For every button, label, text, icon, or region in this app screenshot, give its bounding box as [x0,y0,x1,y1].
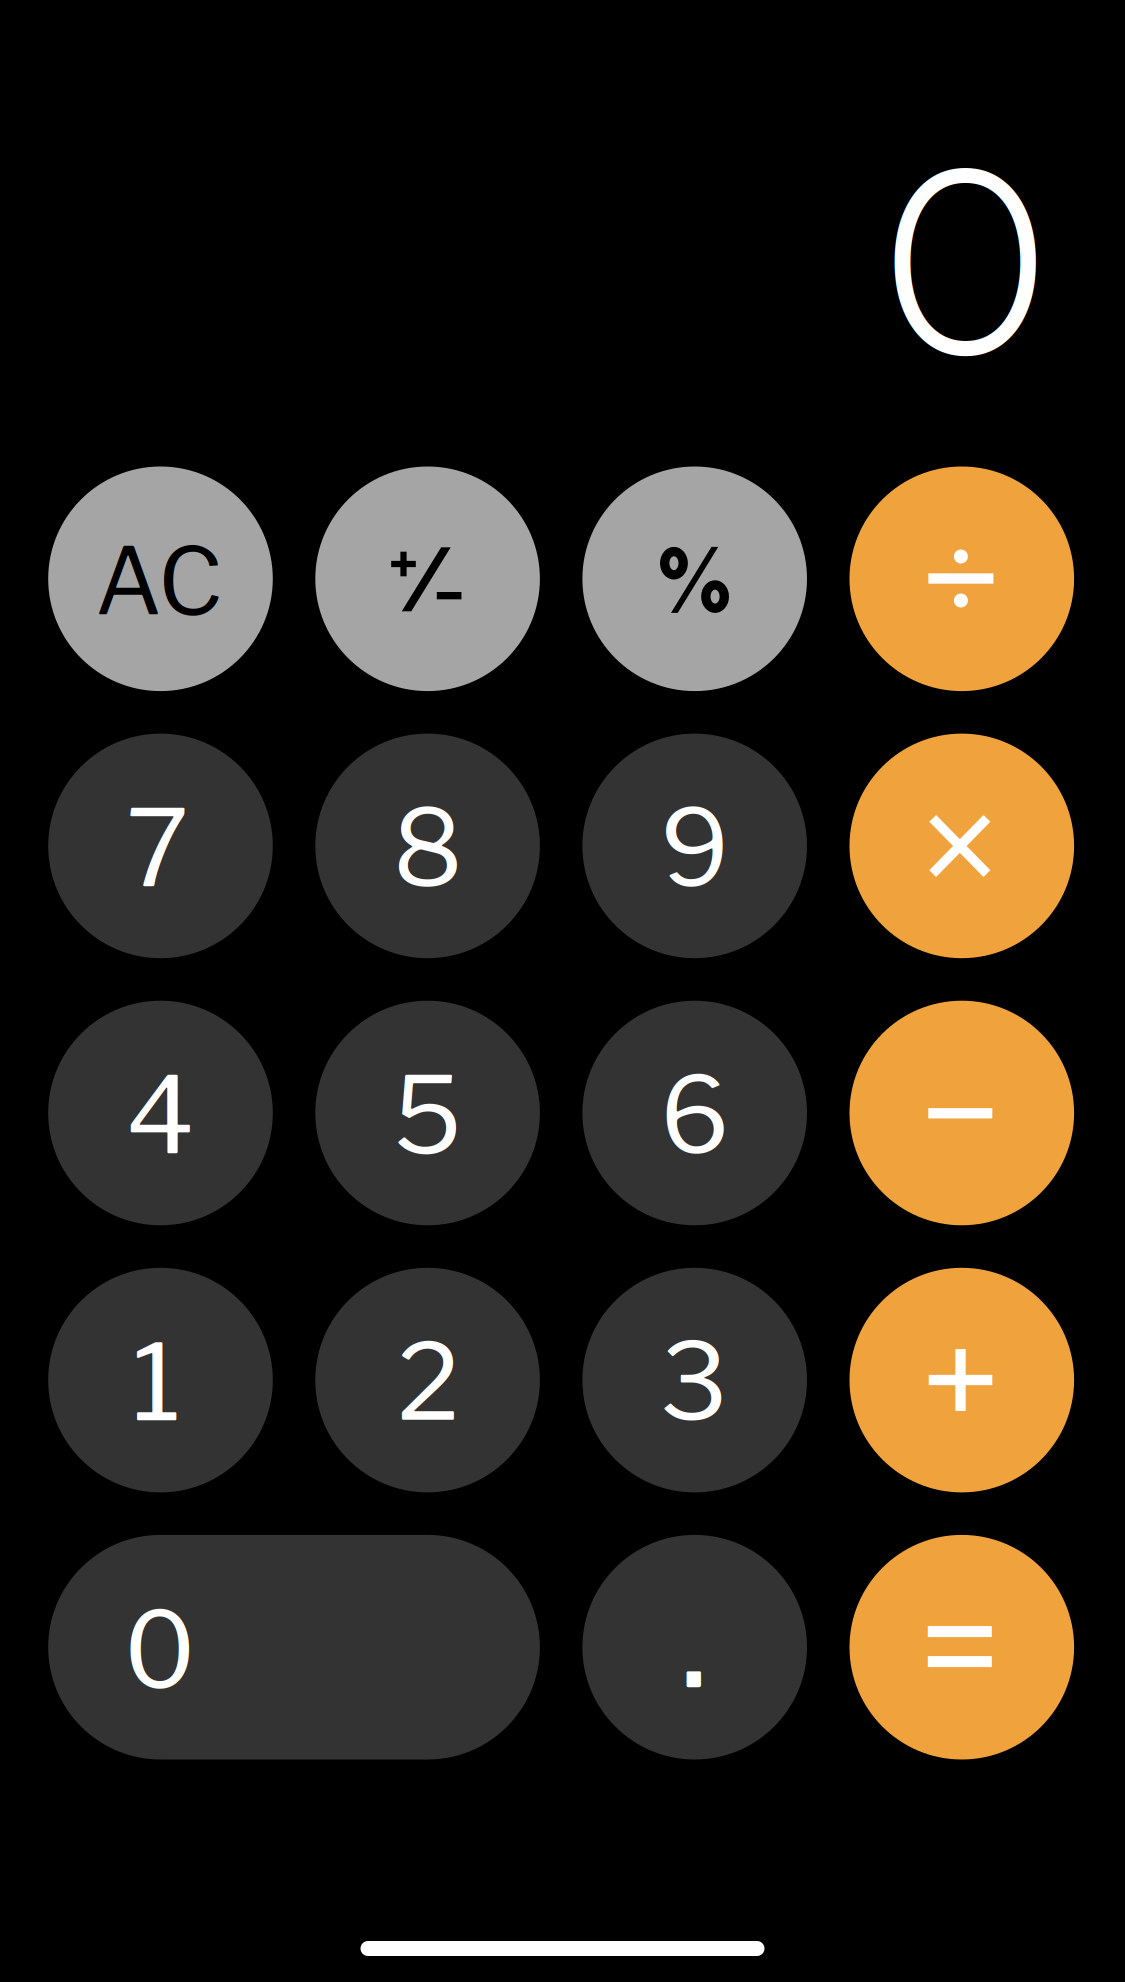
button[interactable]: 1 [48,1268,273,1492]
button[interactable]: Plus minus [315,466,540,691]
button[interactable]: 9 [582,734,807,958]
button[interactable]: 7 [48,734,273,958]
button[interactable]: AC [48,466,273,691]
button[interactable]: 3 [582,1268,807,1492]
staticText: 9 [660,784,729,912]
button[interactable]: 5 [315,1001,540,1225]
staticText: 6 [660,1051,730,1179]
button[interactable]: . [582,1535,807,1759]
staticText: 4 [126,1051,194,1179]
staticText: 0 [123,1586,195,1714]
staticText: . [679,1552,708,1722]
staticText: 7 [126,784,189,912]
staticText: 5 [393,1051,462,1179]
staticText: 1 [132,1319,181,1446]
button[interactable]: Equals [849,1535,1074,1759]
staticText: 2 [397,1318,460,1446]
button[interactable]: 8 [315,734,540,958]
button[interactable]: 4 [48,1001,273,1225]
staticText: 8 [393,784,463,912]
button[interactable]: Plus [849,1268,1074,1492]
button[interactable]: 6 [582,1001,807,1225]
button[interactable]: Minus [849,1001,1074,1225]
button[interactable]: Divide [849,466,1074,691]
button[interactable]: 0 [48,1535,540,1759]
button[interactable]: 2 [315,1268,540,1492]
staticText: 0 [877,100,1053,407]
staticText: 3 [660,1318,728,1446]
button[interactable]: Percent [582,466,807,691]
button[interactable]: Multiply [849,734,1074,958]
staticText: AC [95,526,223,637]
